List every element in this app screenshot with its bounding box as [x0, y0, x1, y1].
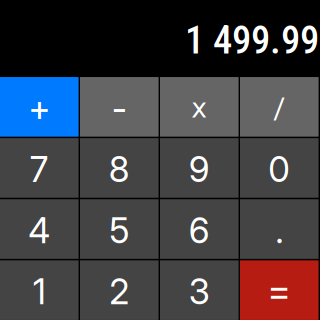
staticText: 2: [109, 271, 129, 313]
staticText: +: [28, 87, 50, 129]
staticText: 6: [189, 210, 210, 251]
staticText: 5: [109, 210, 129, 251]
staticText: 1 499.99: [185, 18, 319, 63]
button[interactable]: 5: [80, 199, 159, 259]
button[interactable]: 2: [80, 260, 159, 320]
button[interactable]: -: [80, 77, 159, 137]
button[interactable]: .: [240, 199, 319, 259]
staticText: 0: [268, 148, 290, 190]
staticText: 9: [189, 148, 210, 190]
button[interactable]: 0: [240, 138, 319, 198]
button[interactable]: 3: [160, 260, 239, 320]
button[interactable]: 9: [160, 138, 239, 198]
staticText: 4: [28, 210, 50, 251]
staticText: 8: [109, 148, 130, 190]
staticText: =: [267, 268, 291, 313]
button[interactable]: /: [240, 77, 319, 137]
button[interactable]: 7: [0, 138, 79, 198]
staticText: 1: [33, 271, 46, 313]
staticText: 3: [189, 271, 210, 313]
button[interactable]: =: [240, 260, 319, 320]
button[interactable]: 1: [0, 260, 79, 320]
staticText: x: [191, 93, 207, 124]
staticText: -: [112, 87, 127, 129]
button[interactable]: 6: [160, 199, 239, 259]
staticText: 7: [30, 148, 49, 190]
button[interactable]: 8: [80, 138, 159, 198]
staticText: /: [273, 91, 285, 126]
button[interactable]: 4: [0, 199, 79, 259]
button[interactable]: +: [0, 77, 79, 137]
staticText: .: [275, 210, 283, 251]
button[interactable]: x: [160, 77, 239, 137]
